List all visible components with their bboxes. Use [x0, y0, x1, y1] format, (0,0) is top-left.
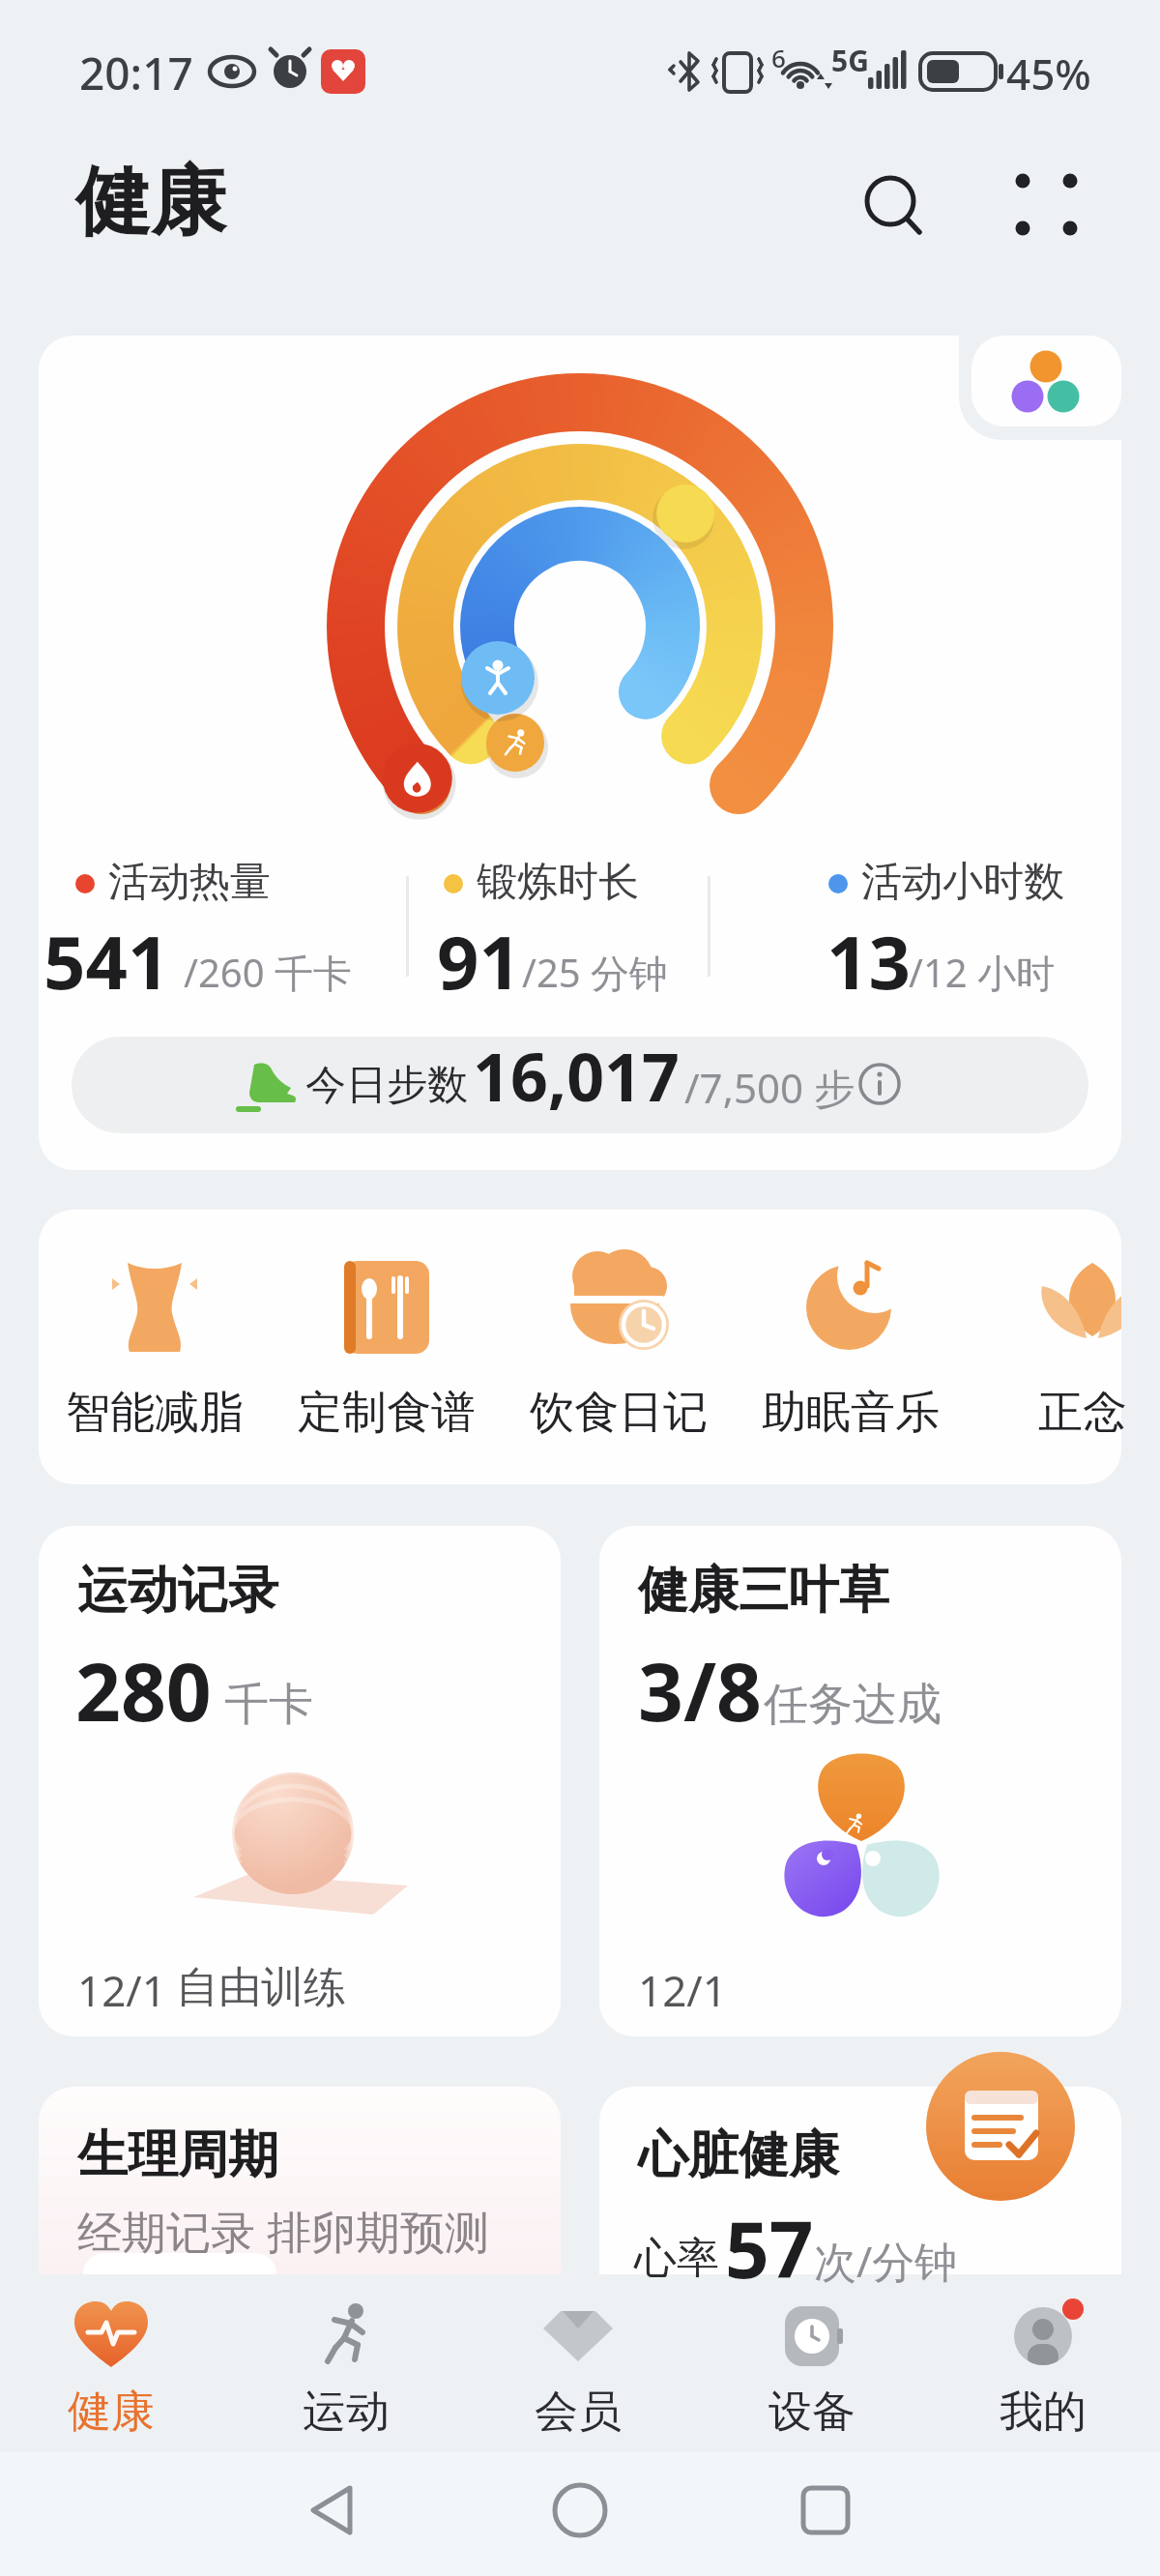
button[interactable] — [39, 336, 1121, 1170]
button[interactable] — [232, 2278, 464, 2443]
staticText: 健康 — [68, 2385, 155, 2440]
staticText: 经期记录 排卵期预测 — [77, 2201, 489, 2262]
button[interactable] — [72, 1228, 237, 1460]
button[interactable] — [1000, 1228, 1160, 1460]
staticText: 饮食日记 — [530, 1385, 708, 1441]
button[interactable] — [39, 1526, 561, 2036]
staticText: 活动热量 — [108, 857, 271, 908]
button[interactable] — [536, 1228, 701, 1460]
button[interactable] — [39, 1210, 1121, 1484]
staticText: 活动小时数 — [861, 857, 1064, 908]
staticText: 541 — [43, 911, 170, 1011]
staticText: 16,017 — [473, 1031, 680, 1121]
staticText: 运动 — [303, 2385, 390, 2440]
button[interactable] — [280, 2452, 396, 2568]
staticText: 正念 — [1038, 1385, 1127, 1441]
button[interactable] — [599, 2087, 1121, 2406]
button[interactable] — [986, 155, 1102, 251]
staticText: 20:17 — [79, 43, 193, 103]
staticText: 45% — [1006, 44, 1091, 102]
staticText: 心率 — [634, 2232, 719, 2285]
staticText: 6 — [771, 41, 786, 74]
staticText: 锻炼时长 — [477, 857, 639, 908]
staticText: 定制食谱 — [298, 1385, 476, 1441]
staticText: 12/1 — [638, 1961, 727, 2019]
button[interactable] — [841, 155, 938, 251]
button[interactable] — [599, 1526, 1121, 2036]
staticText: 自由训练 — [176, 1961, 346, 2014]
button[interactable] — [304, 1228, 469, 1460]
button[interactable] — [39, 2087, 561, 2406]
button[interactable] — [768, 1228, 933, 1460]
staticText: 3/8 — [638, 1636, 762, 1744]
button[interactable] — [0, 2278, 232, 2443]
button[interactable] — [522, 2452, 638, 2568]
staticText: 心脏健康 — [638, 2123, 839, 2187]
button[interactable] — [928, 2278, 1160, 2443]
staticText: 13 — [826, 911, 911, 1011]
staticText: 会员 — [535, 2385, 622, 2440]
staticText: 我的 — [1000, 2385, 1087, 2440]
staticText: /7,500 步 — [684, 1060, 855, 1115]
staticText: 今日步数 — [305, 1060, 468, 1111]
staticText: 运动记录 — [77, 1559, 278, 1623]
button[interactable] — [696, 2278, 928, 2443]
button[interactable] — [464, 2278, 696, 2443]
staticText: 91 — [437, 911, 521, 1011]
staticText: 助眠音乐 — [762, 1385, 940, 1441]
staticText: 12/1 — [77, 1961, 166, 2019]
staticText: /25 分钟 — [522, 946, 669, 999]
staticText: 5G — [831, 41, 869, 80]
staticText: 任务达成 — [764, 1677, 942, 1733]
staticText: 生理周期 — [77, 2123, 278, 2187]
button[interactable] — [767, 2452, 883, 2568]
staticText: 健康 — [75, 155, 226, 249]
staticText: 次/分钟 — [814, 2232, 958, 2290]
staticText: 设备 — [768, 2385, 855, 2440]
staticText: /12 小时 — [909, 946, 1056, 999]
staticText: 57 — [725, 2195, 814, 2300]
button[interactable] — [72, 1037, 1088, 1133]
staticText: /260 千卡 — [184, 946, 352, 999]
staticText: 智能减脂 — [66, 1385, 244, 1441]
staticText: 280 — [75, 1636, 212, 1744]
staticText: 千卡 — [224, 1677, 313, 1733]
staticText: 健康三叶草 — [638, 1559, 889, 1623]
button[interactable] — [971, 336, 1121, 426]
